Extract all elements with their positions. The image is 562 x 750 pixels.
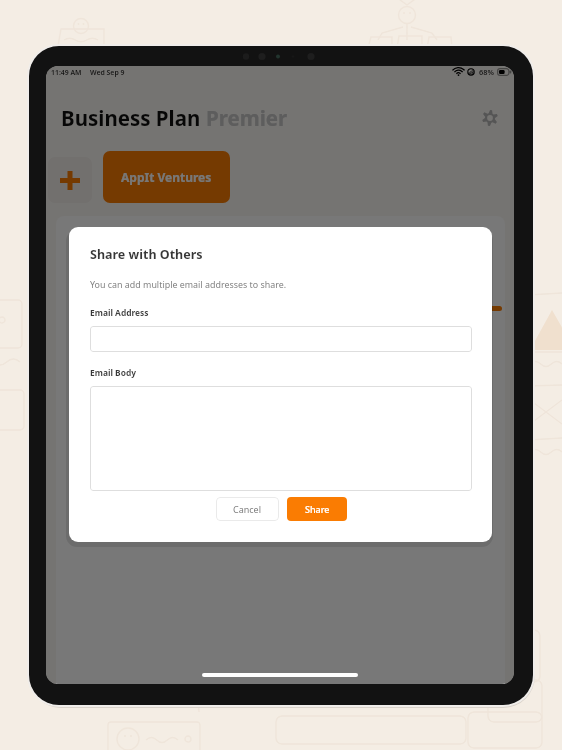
staticText: 11:49 AM	[51, 68, 82, 77]
button[interactable]: Email address field	[90, 326, 472, 352]
button[interactable]: Add business	[48, 157, 92, 203]
staticText: AppIt Ventures	[121, 169, 212, 185]
button[interactable]: Email body field	[90, 386, 472, 491]
button[interactable]: Cancel	[216, 497, 279, 521]
staticText: Share	[305, 503, 330, 515]
staticText: Cancel	[233, 503, 262, 515]
staticText: Email Body	[90, 367, 137, 378]
button[interactable]: AppIt Ventures	[103, 151, 230, 203]
button[interactable]: Settings	[478, 106, 502, 130]
staticText: You can add multiple email addresses to …	[90, 278, 287, 290]
staticText: Email Address	[90, 307, 149, 318]
staticText: Business Plan	[61, 104, 206, 132]
button[interactable]: Share	[287, 497, 347, 521]
staticText: Share with Others	[90, 246, 203, 263]
staticText: 68%	[479, 67, 494, 77]
staticText: Wed Sep 9	[90, 68, 125, 77]
staticText: Premier	[206, 104, 288, 132]
